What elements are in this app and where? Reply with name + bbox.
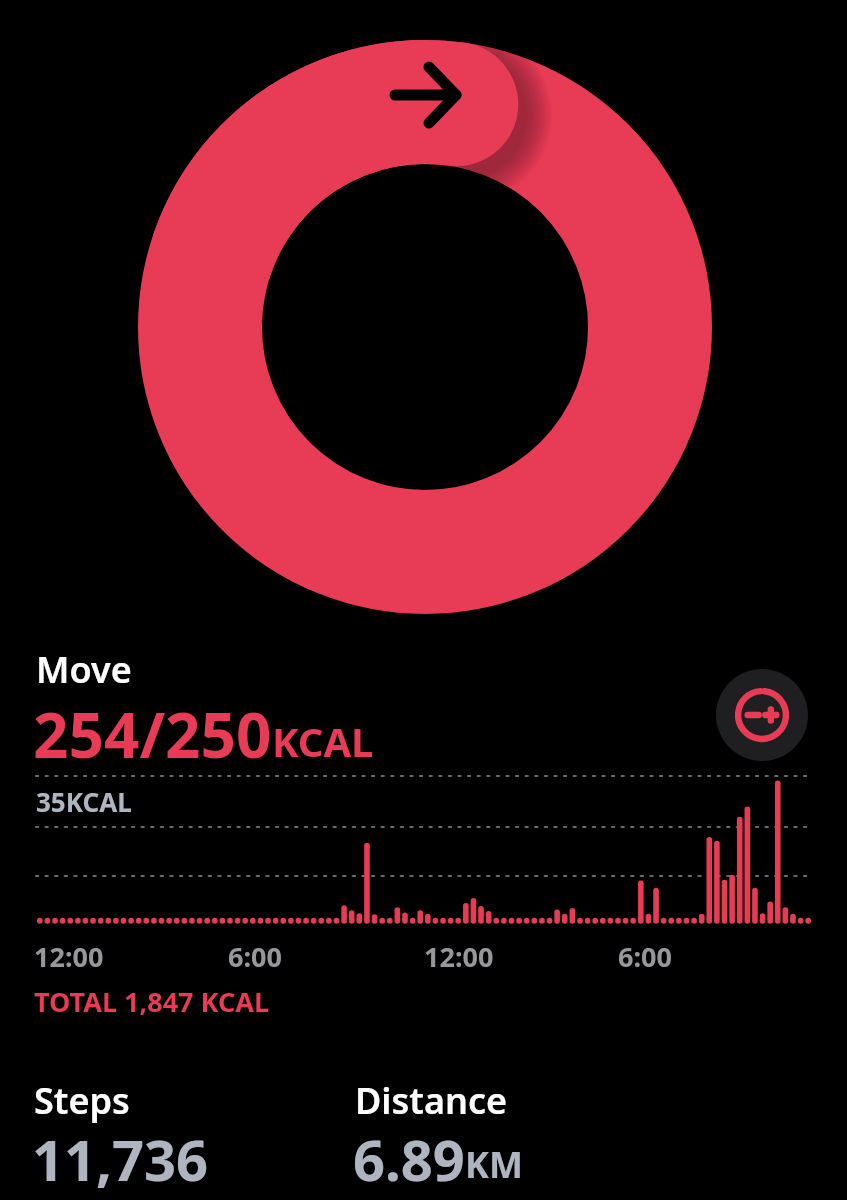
button[interactable]: Move ring, 254 of 250 kilocalories: [138, 40, 712, 614]
button[interactable]: Change Move Goal: [716, 669, 808, 761]
